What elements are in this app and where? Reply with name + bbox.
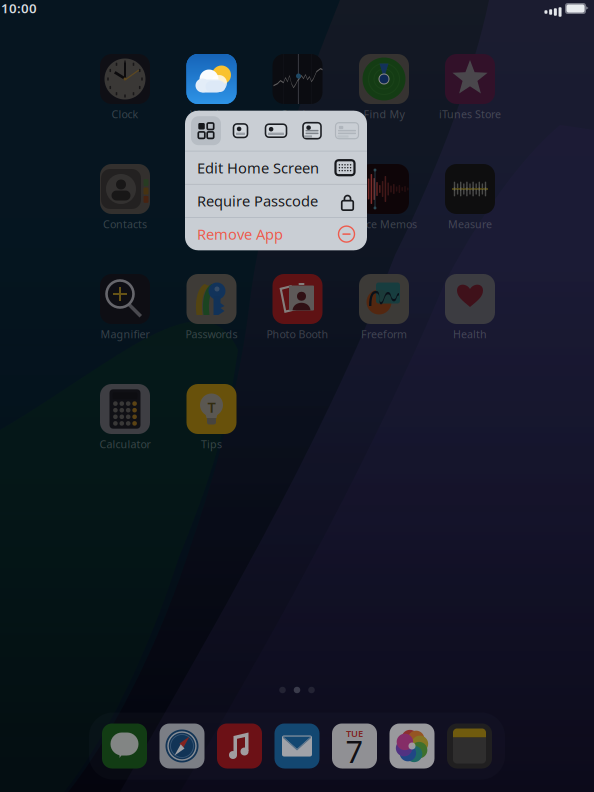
button[interactable]: T (165, 384, 257, 449)
button[interactable]: Passwords (165, 274, 257, 339)
button[interactable] (251, 164, 343, 229)
button[interactable]: Calendar (332, 723, 377, 768)
button[interactable]: Weather (165, 54, 257, 119)
staticText: Edit Home Screen (197, 158, 319, 177)
button[interactable]: Edit Home Screen (185, 151, 367, 184)
staticText: T (207, 397, 215, 417)
button[interactable]: Notes (447, 723, 492, 768)
staticText: Voice Memos (351, 217, 417, 231)
staticText: iTunes Store (439, 107, 501, 121)
button[interactable]: Large widget (296, 111, 328, 151)
staticText: TUE (346, 727, 363, 740)
staticText: 10:00 (1, 0, 37, 17)
button[interactable]: Require Passcode (185, 185, 367, 217)
staticText: Health (453, 327, 487, 341)
staticText: Calculator (99, 437, 150, 451)
staticText: Passwords (185, 327, 237, 341)
button[interactable]: Photo Booth (251, 274, 343, 339)
staticText: Require Passcode (197, 191, 318, 211)
staticText: Stocks (281, 107, 313, 121)
staticText: Magnifier (100, 327, 149, 341)
button[interactable]: Calculator (79, 384, 171, 449)
staticText: 7 (345, 731, 363, 771)
staticText: Remove App (197, 224, 283, 244)
button[interactable]: Magnifier (79, 274, 171, 339)
staticText: Contacts (103, 217, 147, 231)
button[interactable]: Health (424, 274, 516, 339)
button[interactable]: Safari (159, 723, 204, 768)
staticText: Tips (201, 437, 222, 451)
button[interactable]: Find My (338, 54, 430, 119)
button[interactable]: Freeform (338, 274, 430, 339)
button[interactable]: Clock (79, 54, 171, 119)
button[interactable]: Weather (186, 54, 236, 104)
button[interactable]: Measure (424, 164, 516, 229)
button[interactable]: Mail (274, 723, 319, 768)
button[interactable]: iTunes Store (424, 54, 516, 119)
staticText: Clock (111, 107, 138, 121)
staticText: Find My (363, 107, 404, 121)
staticText: Freeform (361, 327, 407, 341)
button[interactable]: Contacts (79, 164, 171, 229)
button[interactable] (165, 164, 257, 229)
button[interactable]: Music (217, 723, 262, 768)
button[interactable]: Photos (389, 723, 434, 768)
button[interactable]: Small widget (224, 111, 256, 151)
button[interactable]: Messages (102, 723, 147, 768)
button[interactable]: Extra large widget (331, 111, 363, 151)
staticText: Photo Booth (266, 327, 328, 341)
button[interactable]: Voice Memos (338, 164, 430, 229)
button[interactable]: App (190, 111, 222, 151)
staticText: Measure (448, 217, 492, 231)
button[interactable]: Medium widget (260, 111, 292, 151)
button[interactable]: Stocks (251, 54, 343, 119)
staticText: Weather (190, 107, 233, 121)
button[interactable]: Remove App (185, 218, 367, 250)
